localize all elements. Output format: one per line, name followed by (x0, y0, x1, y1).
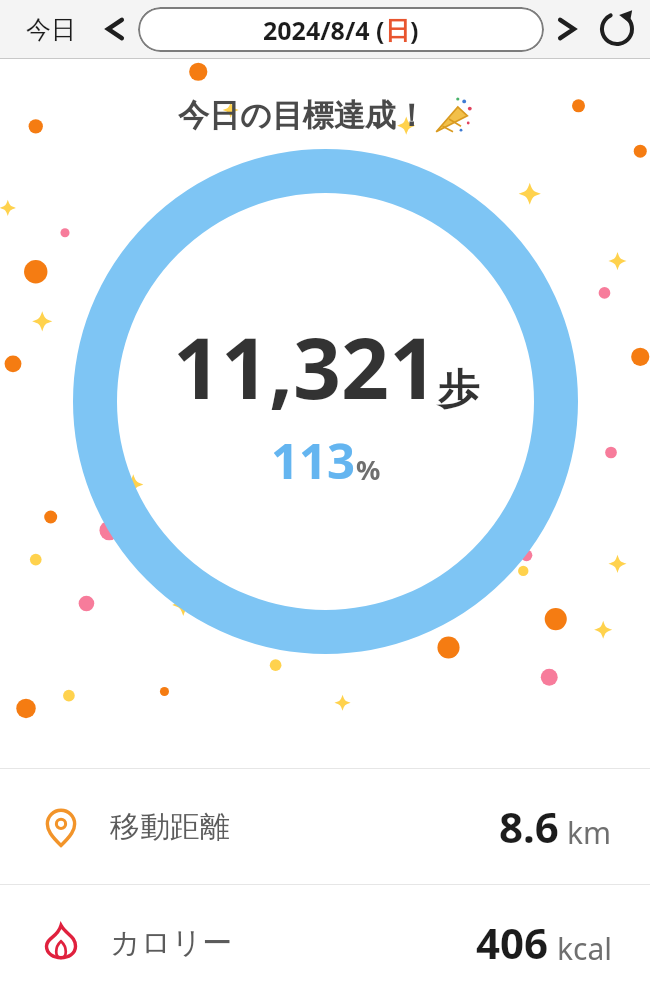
staticText: % (356, 451, 381, 488)
staticText: 今日 (26, 14, 76, 45)
staticText: ) (410, 13, 419, 47)
button[interactable]: 2024/8/4 ( (138, 7, 544, 52)
staticText: km (567, 812, 612, 853)
button[interactable]: Refresh (598, 10, 636, 48)
button[interactable]: Next day (550, 12, 584, 46)
staticText: 2024/8/4 ( (263, 13, 385, 47)
staticText: 11,321 (173, 309, 438, 423)
staticText: 移動距離 (110, 808, 230, 846)
button[interactable]: Previous day (98, 12, 132, 46)
staticText: kcal (557, 928, 612, 969)
staticText: 歩 (438, 364, 479, 416)
button[interactable]: 移動距離 (0, 769, 650, 884)
staticText: 今日の目標達成！ (178, 96, 427, 135)
staticText: 8.6 (499, 798, 559, 855)
button[interactable]: 今日 (16, 6, 86, 53)
staticText: カロリー (110, 924, 233, 962)
staticText: 406 (476, 914, 549, 971)
button[interactable]: カロリー (0, 885, 650, 1000)
staticText: 日 (385, 15, 410, 46)
staticText: 113 (271, 427, 356, 494)
